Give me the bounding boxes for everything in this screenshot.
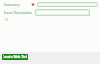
button[interactable]: Toggle option — [5, 18, 8, 21]
button[interactable]: Create Web Ticket — [2, 54, 28, 60]
staticText: Create Web Ticket — [2, 55, 28, 59]
button[interactable]: Summary input — [37, 2, 98, 7]
staticText: Summary — [4, 2, 20, 7]
button[interactable]: Issue description input — [35, 9, 90, 16]
staticText: Issue Description — [4, 10, 32, 15]
